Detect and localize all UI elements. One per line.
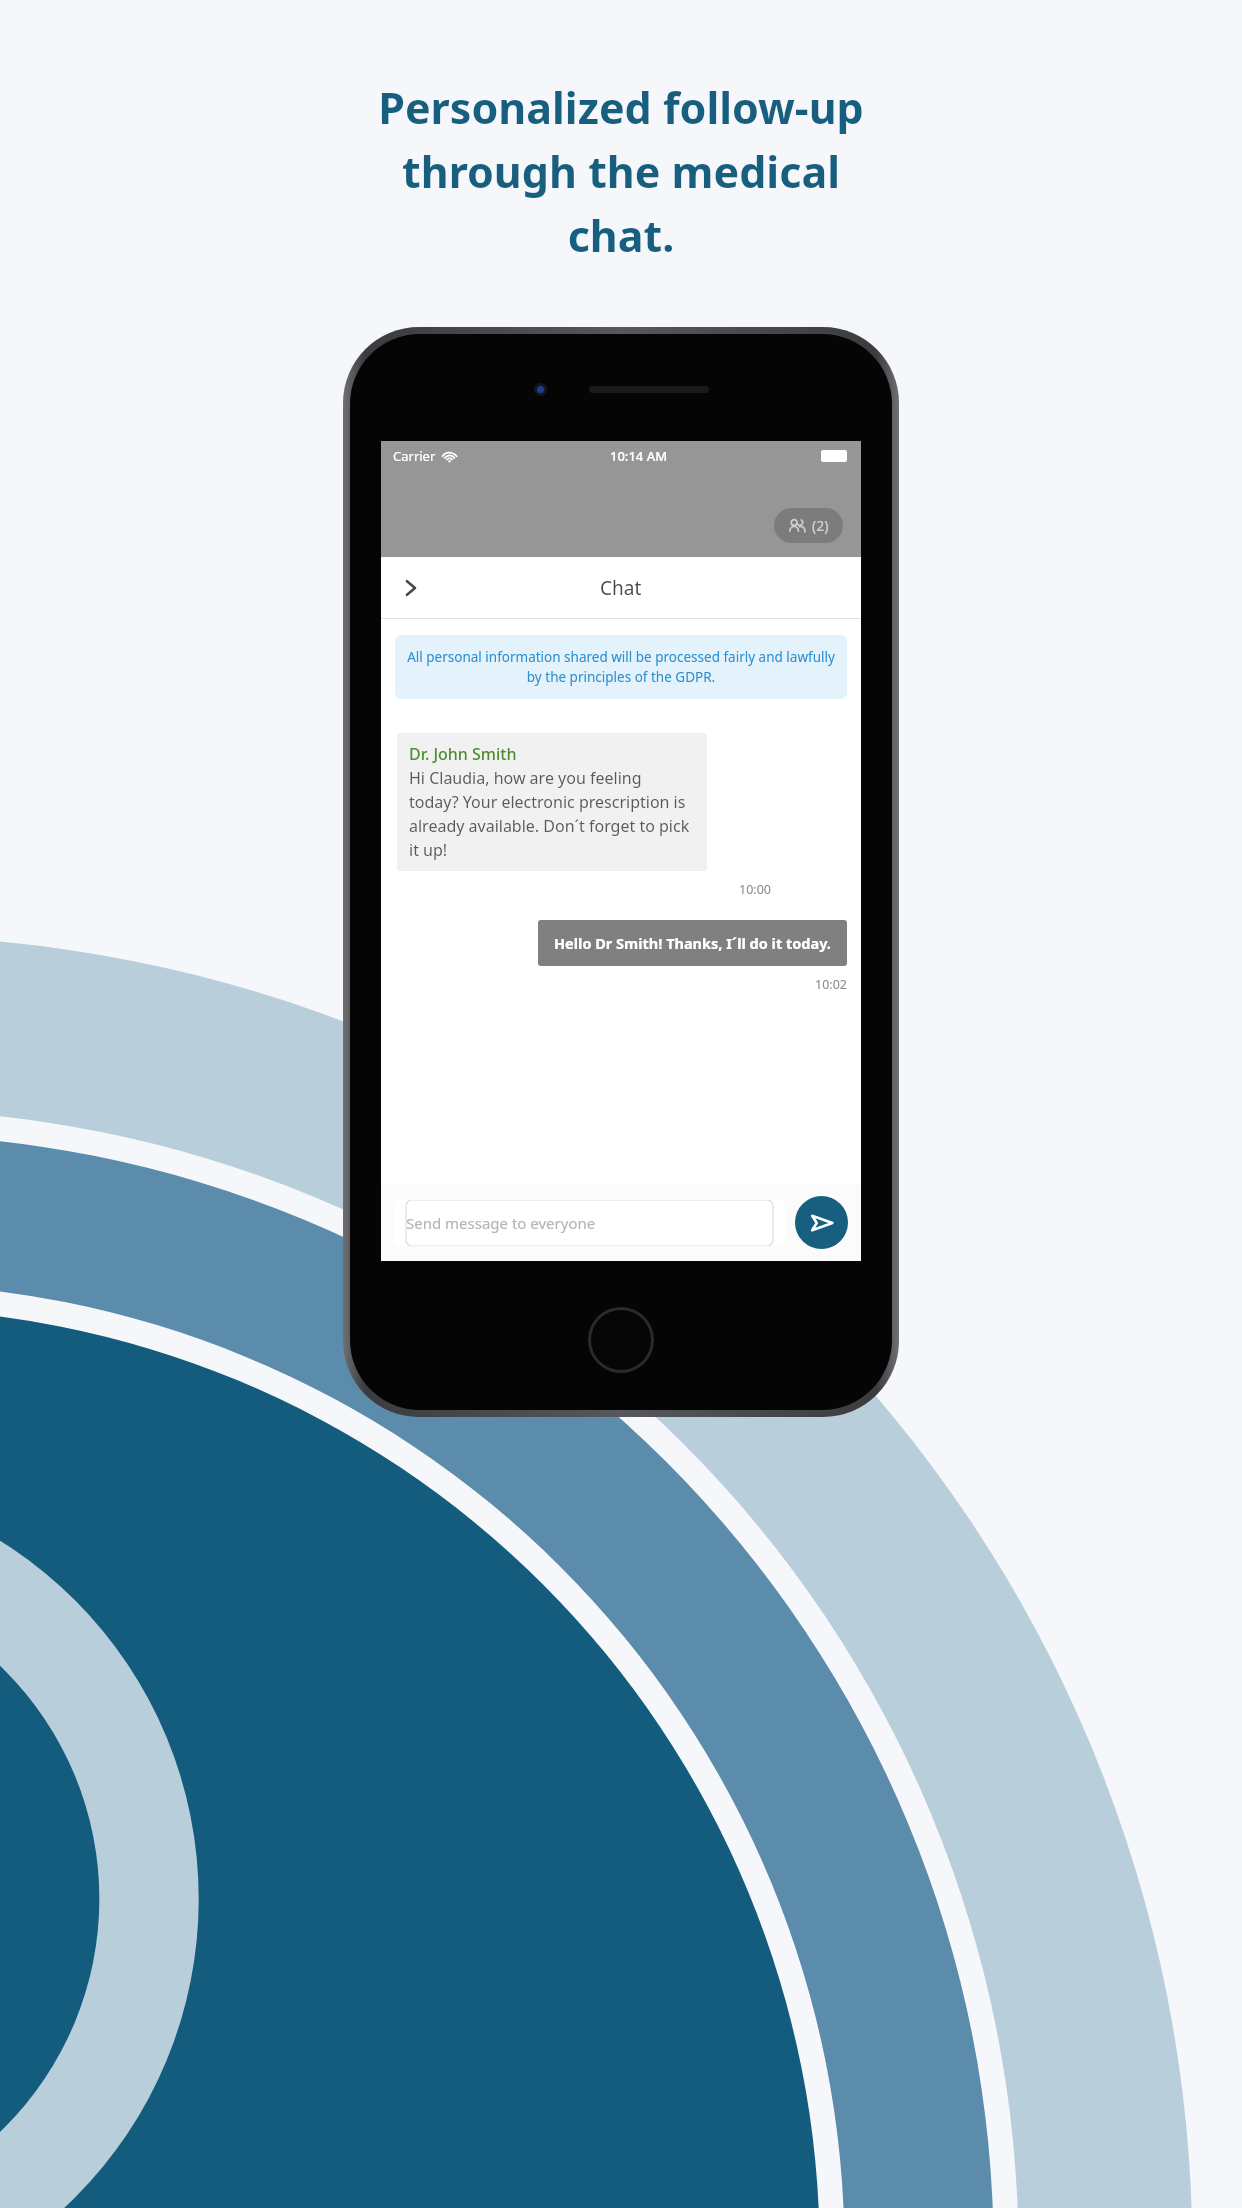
button[interactable]: Send message to everyone xyxy=(394,1200,785,1246)
staticText: 10:00 xyxy=(381,881,771,898)
staticText: Hello Dr Smith! Thanks, I´ll do it today… xyxy=(554,933,831,953)
staticText: 10:02 xyxy=(381,976,847,993)
staticText: Dr. John Smith xyxy=(409,743,517,765)
staticText: 10:14 AM xyxy=(610,447,668,465)
button[interactable]: (2) xyxy=(774,508,843,543)
staticText: Hi Claudia, how are you feeling today? Y… xyxy=(409,767,695,861)
button[interactable]: Hello Dr Smith! Thanks, I´ll do it today… xyxy=(538,920,847,966)
staticText: Send message to everyone xyxy=(406,1213,596,1233)
staticText: Personalized follow-up through the medic… xyxy=(34,78,1208,265)
button[interactable]: Send xyxy=(795,1196,848,1249)
staticText: Carrier xyxy=(393,447,436,465)
button[interactable]: All personal information shared will be … xyxy=(395,635,847,699)
staticText: (2) xyxy=(812,516,829,535)
button[interactable]: Dr. John Smith xyxy=(397,733,707,871)
staticText: Chat xyxy=(600,575,642,601)
button[interactable]: Back xyxy=(387,564,435,612)
staticText: All personal information shared will be … xyxy=(407,648,835,686)
